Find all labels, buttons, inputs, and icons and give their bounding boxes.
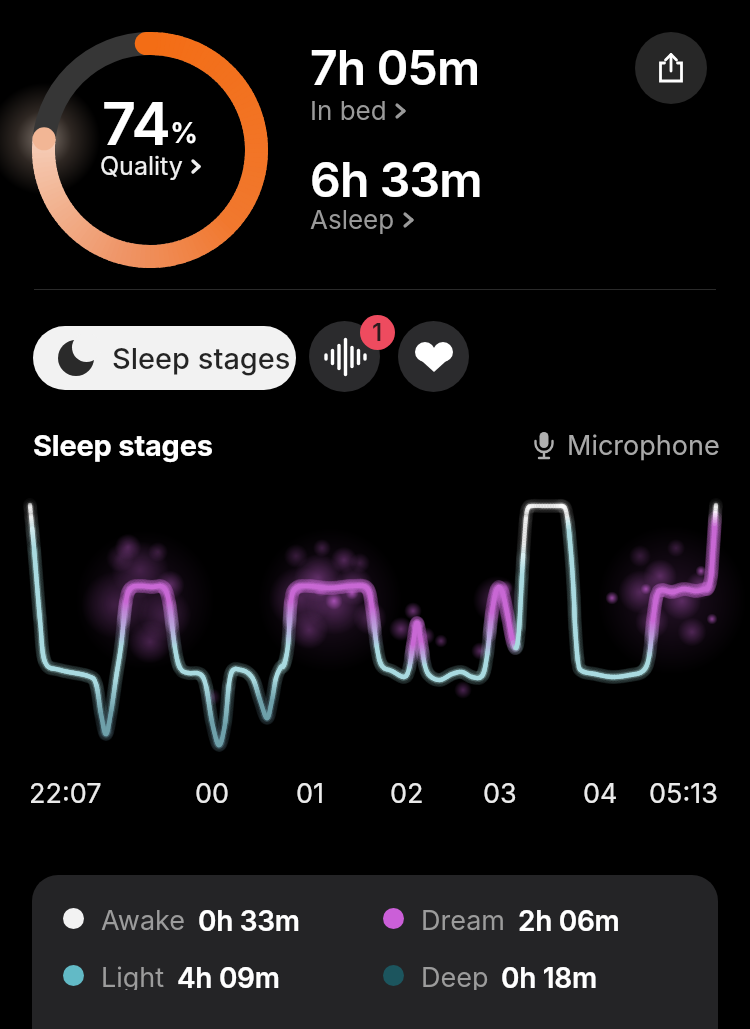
staticText: Awake	[101, 904, 186, 933]
staticText: 22:07	[29, 777, 102, 810]
staticText: 74	[102, 88, 170, 159]
button[interactable]: Awake	[63, 904, 300, 933]
staticText: 4h 09m	[177, 961, 280, 990]
staticText: %	[170, 116, 199, 150]
staticText: Quality	[100, 151, 183, 181]
staticText: Sleep stages	[112, 341, 291, 376]
staticText: Deep	[421, 961, 489, 990]
staticText: 0h 18m	[501, 961, 597, 990]
staticText: 6h 33m	[310, 150, 482, 208]
staticText: 05:13	[649, 777, 718, 810]
staticText: 1	[372, 318, 383, 347]
staticText: Sleep stages	[33, 428, 213, 463]
button[interactable]: Sleep stages	[33, 326, 296, 390]
staticText: 7h 05m	[310, 38, 480, 96]
button[interactable]: Microphone	[534, 429, 720, 462]
button[interactable]	[398, 321, 469, 392]
button[interactable]: Dream	[383, 904, 620, 933]
staticText: In bed	[310, 95, 387, 126]
button[interactable]: Deep	[383, 961, 597, 990]
staticText: 02	[390, 777, 424, 810]
staticText: 00	[195, 777, 230, 810]
button[interactable]: 74	[32, 32, 268, 268]
staticText: Microphone	[567, 429, 720, 462]
staticText: 04	[583, 777, 618, 810]
staticText: 01	[296, 777, 325, 810]
staticText: 0h 33m	[198, 904, 300, 933]
button[interactable]: Asleep	[310, 204, 413, 235]
button[interactable]: In bed	[310, 95, 405, 126]
button[interactable]: Light	[63, 961, 280, 990]
staticText: 2h 06m	[518, 904, 620, 933]
button[interactable]	[635, 32, 707, 104]
button[interactable]	[309, 321, 380, 392]
staticText: Dream	[421, 904, 506, 933]
staticText: 03	[483, 777, 517, 810]
staticText: Asleep	[310, 204, 395, 235]
staticText: Light	[101, 961, 165, 990]
